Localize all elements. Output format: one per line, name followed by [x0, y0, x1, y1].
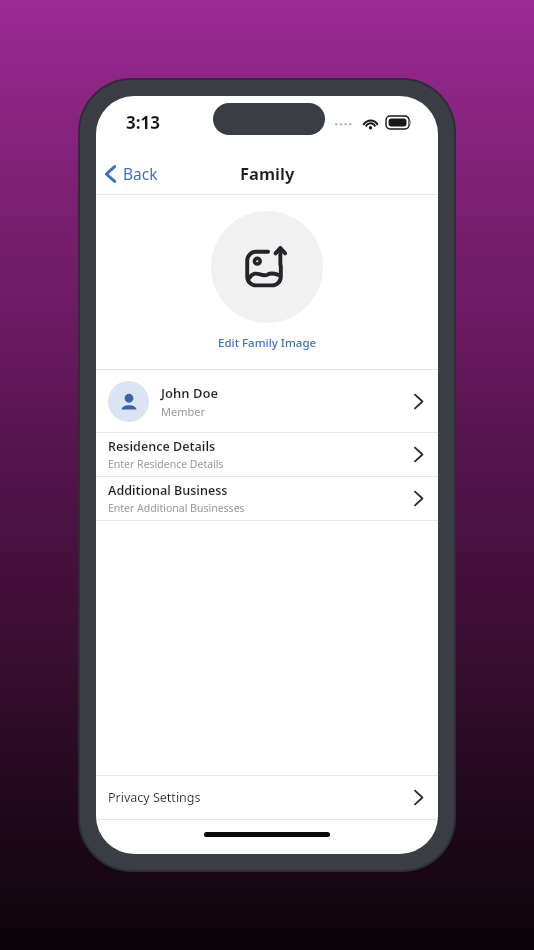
button[interactable]: Back — [96, 157, 170, 190]
staticText: Additional Business — [108, 482, 228, 499]
button[interactable]: Residence Details — [96, 433, 438, 476]
staticText: Member — [161, 404, 205, 419]
staticText: Enter Additional Businesses — [108, 501, 245, 515]
button[interactable]: Additional Business — [96, 477, 438, 520]
staticText: John Doe — [161, 384, 219, 402]
button[interactable]: John Doe — [96, 370, 438, 432]
button[interactable]: Edit Family Image — [211, 211, 323, 323]
staticText: Back — [123, 163, 158, 184]
staticText: Family — [240, 162, 295, 184]
staticText: 3:13 — [126, 111, 160, 134]
staticText: Privacy Settings — [108, 789, 413, 806]
button[interactable]: Privacy Settings — [96, 776, 438, 819]
staticText: Enter Residence Details — [108, 457, 224, 471]
staticText: Residence Details — [108, 438, 216, 455]
button[interactable]: Edit Family Image — [212, 333, 323, 353]
